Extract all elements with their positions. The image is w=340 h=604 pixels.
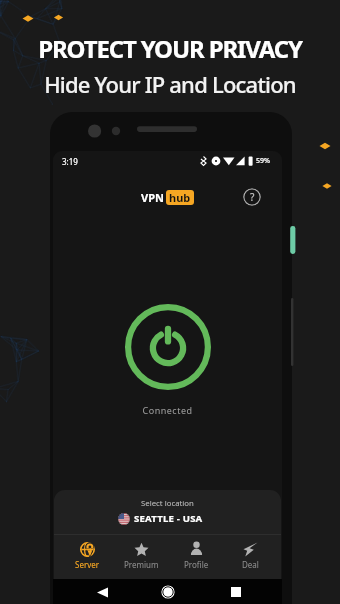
staticText: Profile: [184, 559, 209, 570]
button[interactable]: Profile: [173, 535, 219, 570]
staticText: hub: [169, 190, 191, 205]
staticText: Deal: [242, 559, 259, 570]
staticText: Hide Your IP and Location: [44, 69, 296, 99]
staticText: Select location: [141, 498, 194, 509]
staticText: 59%: [256, 156, 270, 166]
staticText: VPN: [141, 190, 164, 205]
button[interactable]: Disconnect VPN: [124, 303, 212, 391]
staticText: PROTECT YOUR PRIVACY: [38, 32, 302, 65]
staticText: SEATTLE - USA: [134, 512, 203, 525]
staticText: Premium: [124, 559, 159, 570]
button[interactable]: Recents: [224, 580, 248, 604]
button[interactable]: VPN: [141, 190, 194, 205]
button[interactable]: Back: [90, 580, 114, 604]
button[interactable]: Premium: [118, 535, 164, 570]
staticText: Connected: [53, 404, 282, 416]
button[interactable]: Home: [156, 580, 180, 604]
staticText: 3:19: [62, 156, 78, 167]
button[interactable]: Help: [243, 188, 261, 206]
staticText: Server: [75, 559, 100, 570]
staticText: ?: [250, 190, 255, 204]
button[interactable]: Server: [64, 535, 110, 570]
button[interactable]: Select location: [54, 490, 281, 534]
button[interactable]: Deal: [227, 535, 273, 570]
